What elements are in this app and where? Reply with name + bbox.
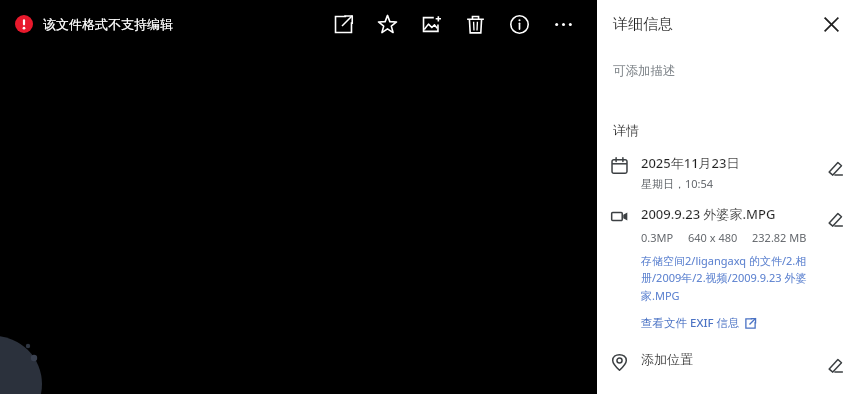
staticText: 可添加描述 — [613, 63, 676, 79]
staticText: 2025年11月23日 — [641, 154, 740, 172]
staticText: 星期日，10:54 — [641, 176, 714, 191]
button[interactable]: Close — [813, 6, 849, 42]
button[interactable]: More options — [541, 2, 585, 46]
button[interactable]: 添加位置 — [597, 351, 857, 379]
staticText: 查看文件 EXIF 信息 — [641, 315, 740, 331]
staticText: 0.3MP — [641, 230, 674, 245]
button[interactable]: Share — [321, 2, 365, 46]
button[interactable]: Edit date — [821, 154, 849, 182]
button[interactable]: Info — [497, 2, 541, 46]
staticText: 640 x 480 — [688, 230, 738, 245]
button[interactable]: 查看文件 EXIF 信息 — [641, 315, 756, 331]
staticText: 232.82 MB — [752, 230, 807, 245]
staticText: 详情 — [613, 122, 639, 138]
button[interactable]: Add to album — [409, 2, 453, 46]
staticText: 2009.9.23 外婆家.MPG — [641, 205, 776, 223]
button[interactable]: Edit location — [821, 351, 849, 379]
staticText: 详细信息 — [613, 15, 673, 34]
button[interactable]: 2009.9.23 外婆家.MPG — [597, 205, 857, 331]
button[interactable]: Favorite — [365, 2, 409, 46]
button[interactable]: 2025年11月23日 — [597, 154, 857, 191]
staticText: 该文件格式不支持编辑 — [43, 16, 173, 32]
button[interactable]: Delete — [453, 2, 497, 46]
button[interactable]: Edit file name — [821, 205, 849, 233]
button[interactable]: 可添加描述 — [597, 48, 857, 94]
staticText: 存储空间2/ligangaxq 的文件/2.相册/2009年/2.视频/2009… — [641, 253, 815, 304]
staticText: 添加位置 — [641, 351, 693, 367]
